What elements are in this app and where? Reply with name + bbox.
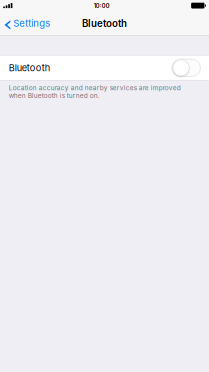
staticText: Location accuracy and nearby services ar…	[9, 84, 181, 100]
staticText: Settings	[13, 18, 50, 29]
staticText: Bluetooth	[9, 62, 50, 73]
button[interactable]: Settings	[0, 11, 53, 36]
staticText: 10:00	[94, 2, 110, 9]
staticText: Bluetooth	[82, 17, 127, 29]
button[interactable]: Bluetooth	[172, 59, 200, 76]
